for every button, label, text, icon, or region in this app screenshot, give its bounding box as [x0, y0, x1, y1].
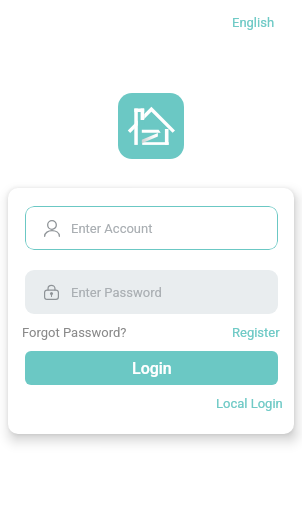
button[interactable]: Forgot Password?: [18, 321, 131, 344]
other: App logo: [118, 93, 184, 159]
button[interactable]: Local Login: [212, 392, 287, 415]
button[interactable]: Enter Account: [25, 206, 278, 250]
staticText: Login: [132, 359, 172, 378]
staticText: Enter Account: [71, 221, 153, 236]
staticText: Forgot Password?: [22, 325, 127, 340]
button[interactable]: Register: [228, 321, 284, 344]
staticText: Local Login: [216, 396, 283, 411]
button[interactable]: Login: [25, 351, 278, 385]
staticText: Enter Password: [71, 285, 162, 300]
button[interactable]: English: [226, 11, 281, 34]
button[interactable]: Enter Password: [25, 270, 278, 314]
staticText: Register: [232, 325, 280, 340]
staticText: English: [232, 15, 275, 30]
